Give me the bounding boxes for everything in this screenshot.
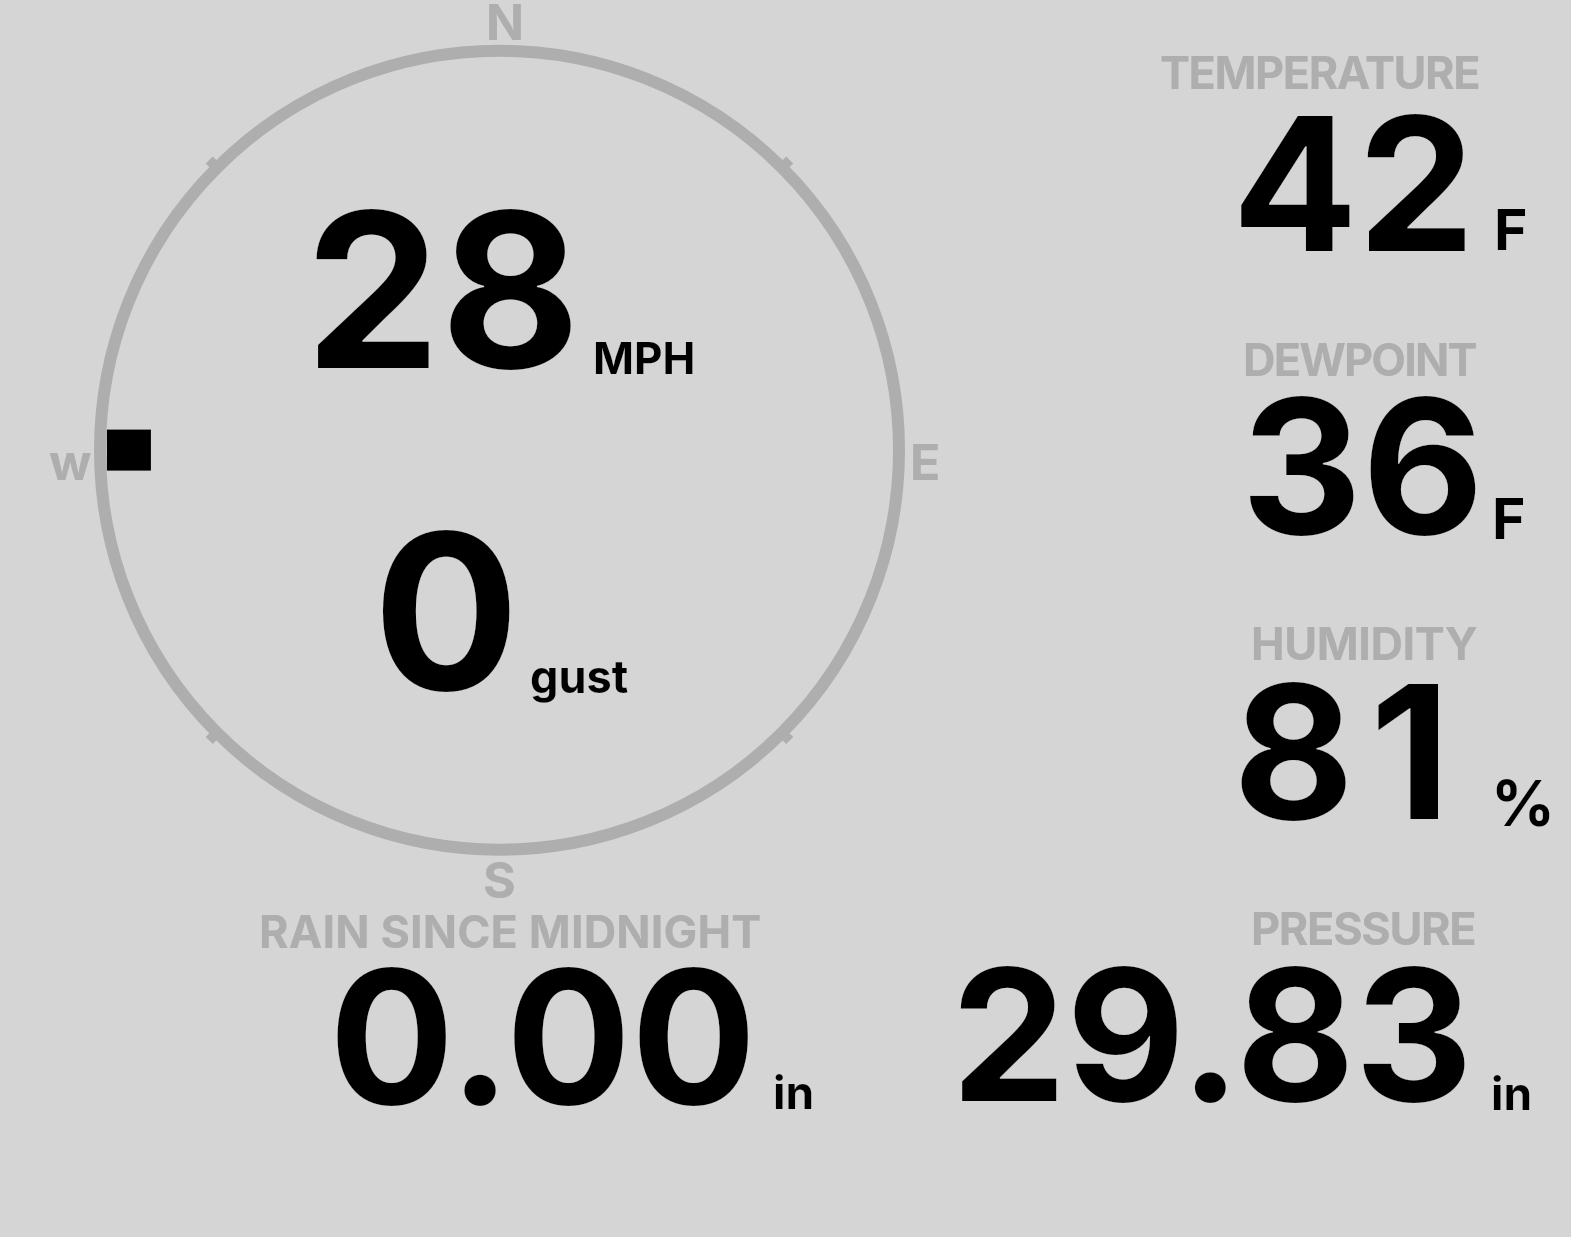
button[interactable]: TEMPERATURE (1120, 30, 1571, 285)
staticText: PRESSURE (1251, 901, 1476, 955)
staticText: HUMIDITY (1251, 616, 1478, 670)
staticText: N (486, 0, 525, 52)
staticText: w (49, 432, 92, 492)
staticText: 0.00 (329, 924, 757, 1149)
button[interactable]: Wind speed and direction dial (40, 0, 960, 900)
button[interactable]: RAIN SINCE MIDNIGHT (230, 890, 850, 1130)
staticText: 28 (305, 160, 581, 420)
button[interactable]: HUMIDITY (1120, 602, 1571, 857)
staticText: DEWPOINT (1243, 332, 1476, 386)
staticText: E (910, 432, 941, 492)
staticText: in (1491, 1065, 1533, 1121)
staticText: S (483, 850, 516, 910)
staticText: gust (530, 649, 629, 703)
button[interactable]: PRESSURE (900, 890, 1571, 1130)
staticText: F (1492, 484, 1526, 553)
staticText: % (1491, 765, 1555, 841)
staticText: in (773, 1064, 815, 1120)
staticText: RAIN SINCE MIDNIGHT (259, 904, 762, 958)
staticText: MPH (593, 331, 696, 384)
staticText: 81 (1233, 639, 1467, 864)
staticText: 29.83 (951, 924, 1473, 1145)
staticText: 36 (1241, 352, 1484, 579)
staticText: F (1494, 195, 1528, 264)
staticText: 42 (1232, 71, 1475, 296)
staticText: TEMPERATURE (1160, 45, 1480, 99)
button[interactable]: DEWPOINT (1120, 318, 1571, 573)
staticText: 0 (373, 480, 520, 743)
